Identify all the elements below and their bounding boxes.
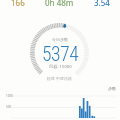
staticText: 步数 — [108, 86, 116, 91]
staticText: 1000 — [6, 94, 13, 98]
staticText: 轻度 中度活跃 — [47, 76, 73, 81]
staticText: 500 — [6, 105, 12, 109]
staticText: 3.54 — [94, 0, 110, 7]
staticText: 目标: 10000 — [49, 64, 72, 70]
staticText: 5374 — [42, 43, 79, 66]
button[interactable] — [30, 23, 89, 82]
staticText: 今日步数 — [52, 37, 68, 42]
staticText: 166 — [11, 0, 25, 7]
staticText: 0h 48m — [45, 0, 74, 7]
button[interactable]: 步数 — [108, 86, 116, 91]
button[interactable]: 166 — [0, 0, 38, 7]
button[interactable]: 0h 48m — [39, 0, 80, 7]
button[interactable]: 3.54 — [81, 0, 120, 7]
